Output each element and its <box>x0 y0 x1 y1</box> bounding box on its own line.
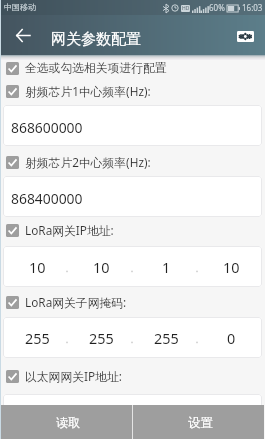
button[interactable]: 以太网网关IP地址: <box>0 364 265 388</box>
button[interactable]: 868600000 <box>3 105 262 146</box>
staticText: 10 <box>223 258 240 278</box>
button[interactable]: 全选或勾选相关项进行配置 <box>0 56 265 80</box>
button[interactable]: 设置 <box>133 405 264 439</box>
staticText: 10 <box>29 258 46 278</box>
button[interactable]: Settings <box>237 31 254 42</box>
staticText: 868400000 <box>11 189 83 208</box>
button[interactable]: 1 <box>197 394 262 435</box>
button[interactable]: 168 <box>67 394 132 435</box>
staticText: 255 <box>25 329 50 349</box>
staticText: 255 <box>89 329 114 349</box>
button[interactable]: 255 <box>3 317 67 358</box>
button[interactable]: 0 <box>197 317 262 358</box>
staticText: LoRa网关IP地址: <box>25 222 114 238</box>
staticText: 255 <box>154 329 179 349</box>
staticText: 以太网网关IP地址: <box>25 368 122 384</box>
button[interactable]: LoRa网关IP地址: <box>0 218 265 242</box>
button[interactable]: 1 <box>132 246 197 287</box>
button[interactable]: 192 <box>3 394 67 435</box>
staticText: 射频芯片1中心频率(Hz): <box>25 83 151 99</box>
staticText: HD <box>182 5 190 12</box>
staticText: 全选或勾选相关项进行配置 <box>25 61 167 76</box>
staticText: 16:03 <box>242 2 263 13</box>
button[interactable]: 10 <box>67 246 132 287</box>
button[interactable]: 1 <box>132 394 197 435</box>
button[interactable]: 255 <box>67 317 132 358</box>
button[interactable]: 射频芯片1中心频率(Hz): <box>0 79 265 103</box>
staticText: 设置 <box>188 415 213 430</box>
staticText: 网关参数配置 <box>51 30 141 49</box>
staticText: 868600000 <box>11 118 83 137</box>
staticText: 射频芯片2中心频率(Hz): <box>25 154 151 170</box>
staticText: 60% <box>209 2 225 13</box>
staticText: 读取 <box>56 415 81 430</box>
staticText: LoRa网关子网掩码: <box>25 294 127 310</box>
staticText: 1 <box>162 258 171 278</box>
button[interactable]: 射频芯片2中心频率(Hz): <box>0 150 265 174</box>
button[interactable]: 10 <box>3 246 67 287</box>
staticText: 10 <box>93 258 110 278</box>
staticText: 0 <box>227 329 236 349</box>
button[interactable]: 255 <box>132 317 197 358</box>
button[interactable]: LoRa网关子网掩码: <box>0 290 265 314</box>
staticText: 中国移动 <box>4 2 36 12</box>
button[interactable]: Back <box>8 20 38 50</box>
button[interactable]: 读取 <box>1 405 132 439</box>
button[interactable]: 868400000 <box>3 176 262 217</box>
button[interactable]: 10 <box>197 246 262 287</box>
